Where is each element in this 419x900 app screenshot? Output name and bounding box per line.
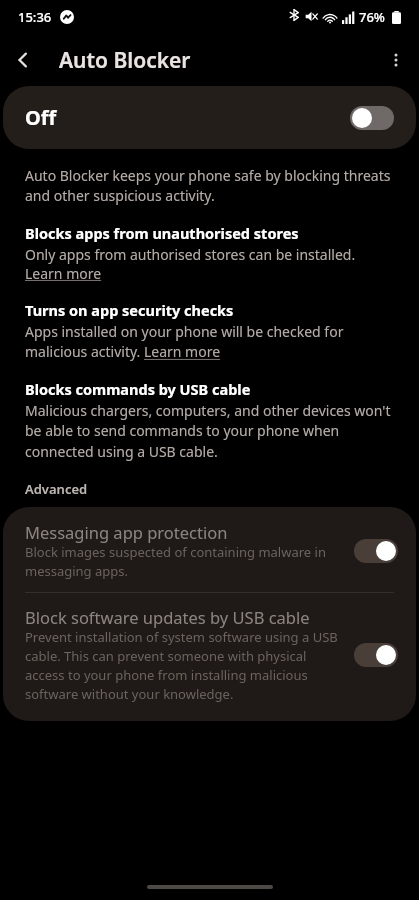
staticText: Apps installed on your phone will be che… — [25, 322, 397, 362]
staticText: 15:36 — [18, 8, 52, 26]
staticText: Prevent installation of system software … — [25, 628, 346, 703]
staticText: Turns on app security checks — [25, 300, 234, 320]
button[interactable]: Toggle on — [354, 643, 398, 667]
staticText: Block images suspected of containing mal… — [25, 543, 346, 580]
staticText: 76% — [359, 8, 385, 26]
staticText: Learn more — [25, 264, 102, 283]
button[interactable]: Block software updates by USB cable — [3, 593, 416, 721]
button[interactable]: Off — [3, 86, 416, 149]
button[interactable]: More options — [373, 37, 419, 83]
staticText: Only apps from authorised stores can be … — [25, 245, 356, 264]
button[interactable]: Back — [0, 37, 46, 83]
button[interactable]: Toggle off — [350, 106, 394, 130]
staticText: Advanced — [25, 480, 88, 498]
staticText: Block software updates by USB cable — [25, 606, 310, 628]
staticText: Off — [25, 104, 57, 131]
staticText: Messaging app protection — [25, 521, 228, 543]
staticText: Auto Blocker keeps your phone safe by bl… — [25, 166, 397, 206]
button[interactable]: Toggle on — [354, 539, 398, 563]
staticText: Blocks commands by USB cable — [25, 379, 251, 399]
button[interactable]: Apps installed on your phone will be che… — [25, 322, 397, 362]
button[interactable]: Messaging app protection — [3, 507, 416, 592]
staticText: Auto Blocker — [59, 46, 191, 75]
staticText: Blocks apps from unauthorised stores — [25, 223, 299, 243]
button[interactable]: Learn more — [25, 264, 102, 283]
staticText: Malicious chargers, computers, and other… — [25, 401, 397, 462]
